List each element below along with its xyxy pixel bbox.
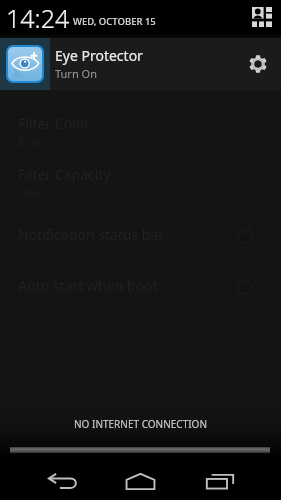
- button[interactable]: Home: [101, 462, 180, 500]
- button[interactable]: Settings: [234, 38, 281, 90]
- staticText: 14:24: [6, 1, 70, 35]
- staticText: Eye Protector: [55, 46, 143, 65]
- staticText: Filter Color: [18, 114, 91, 133]
- button[interactable]: Toggle eye protector: [0, 38, 50, 90]
- staticText: NO INTERNET CONNECTION: [74, 417, 208, 431]
- staticText: Filter Capacity: [18, 165, 111, 184]
- staticText: WED, OCTOBER 15: [73, 15, 156, 28]
- button[interactable]: Recents: [180, 462, 259, 500]
- button[interactable]: Back: [23, 462, 101, 500]
- staticText: Turn On: [55, 66, 97, 81]
